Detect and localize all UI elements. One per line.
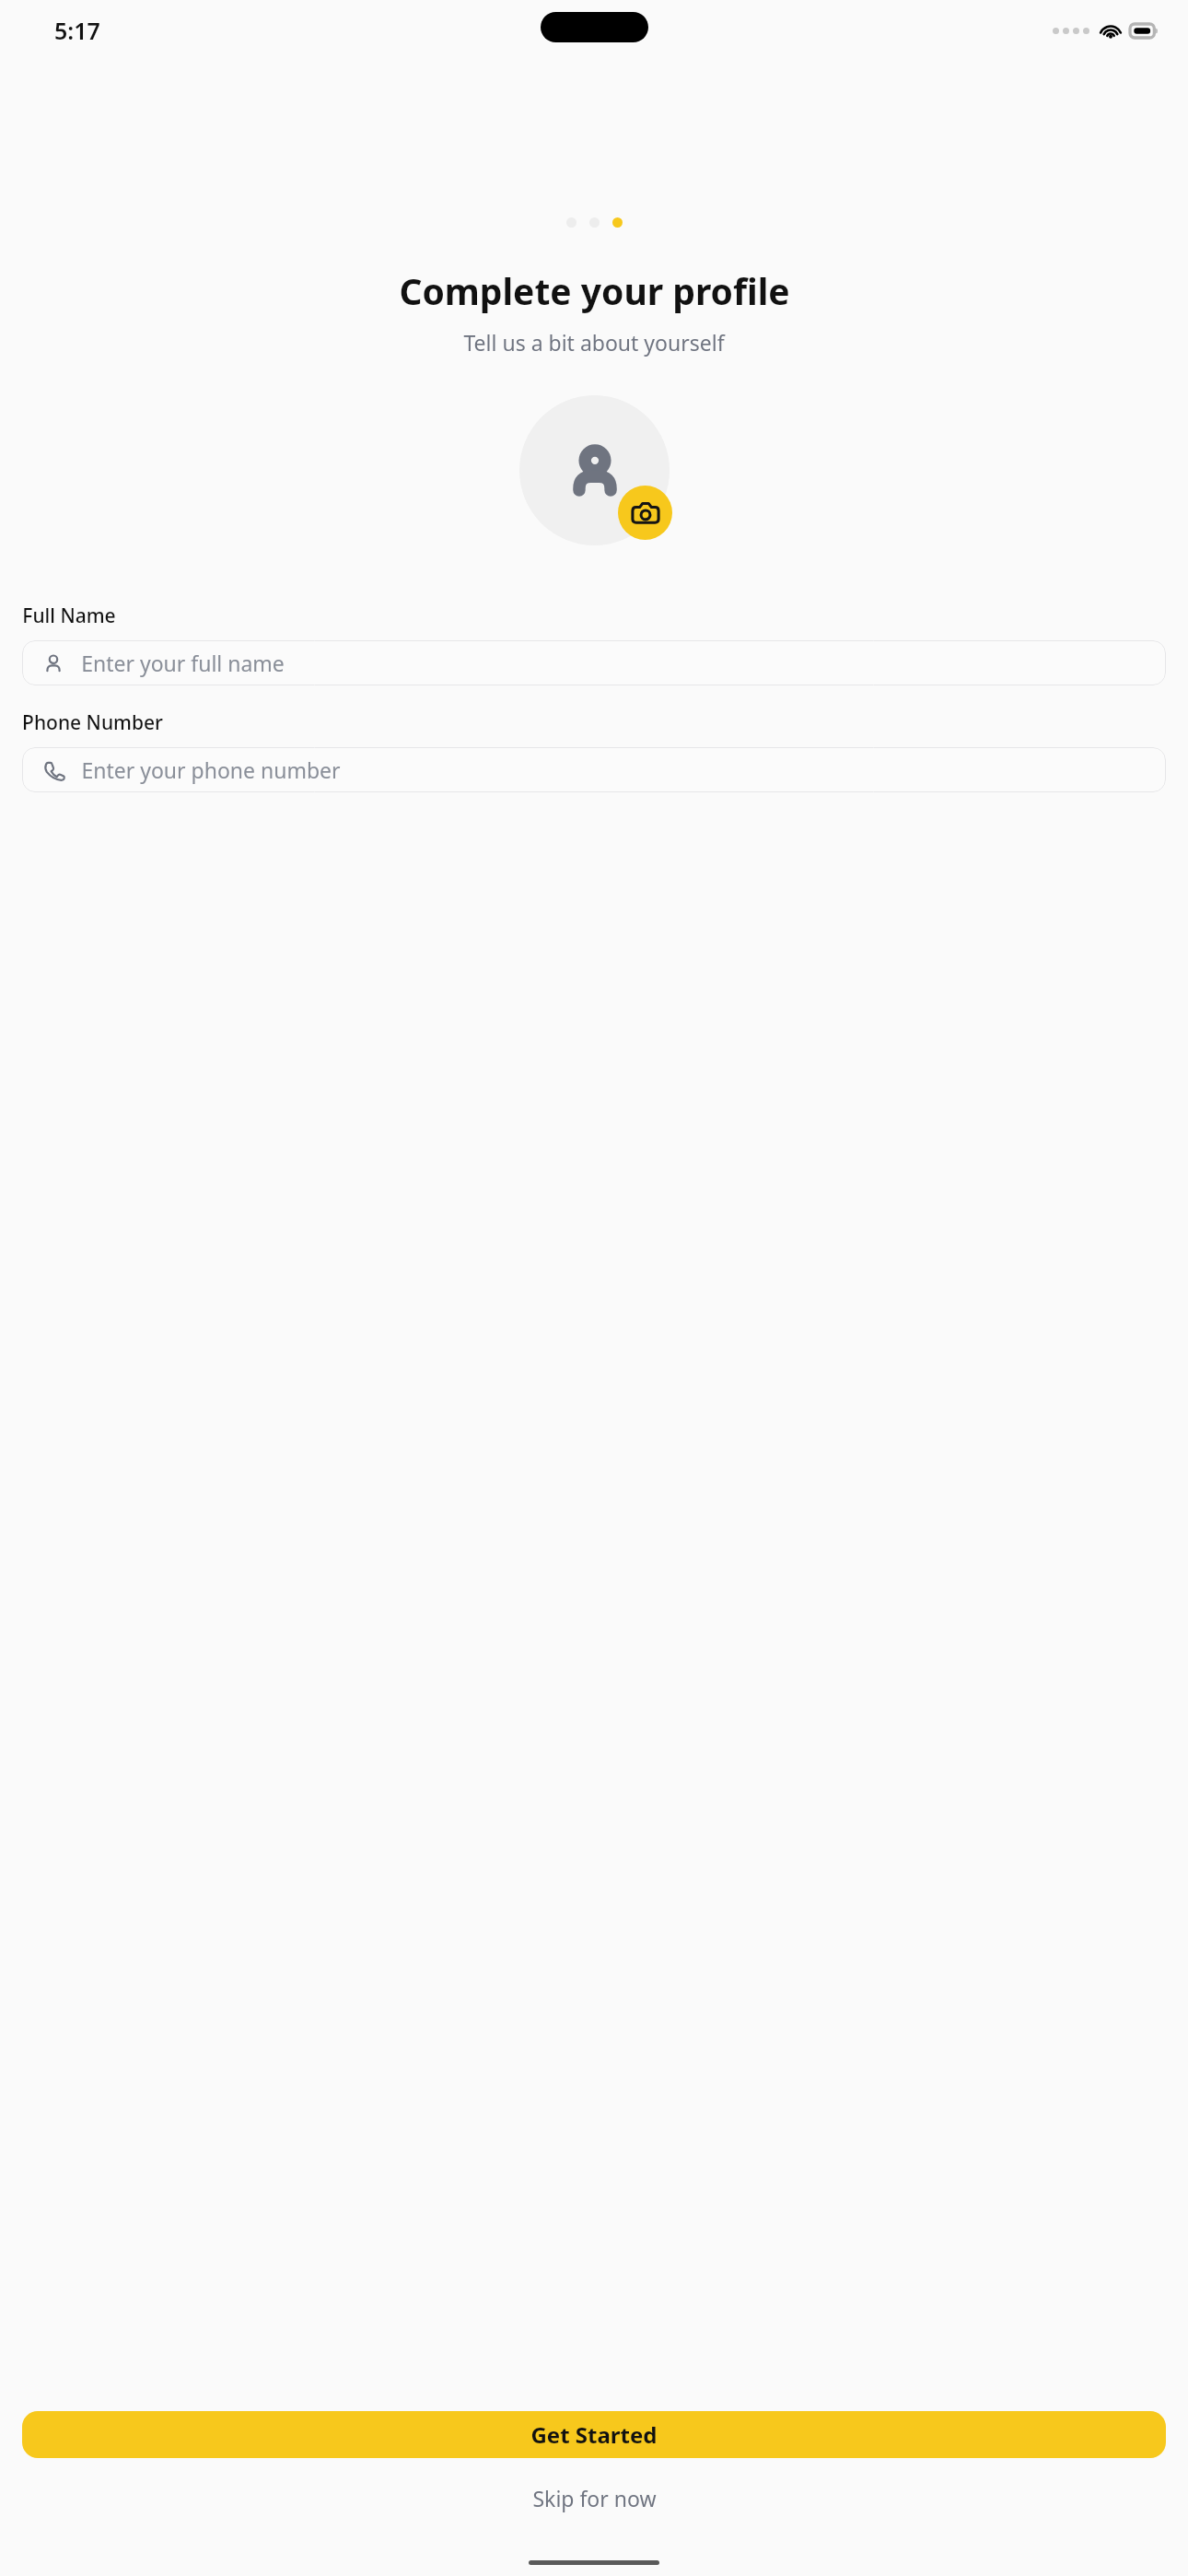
staticText: Phone Number — [22, 709, 163, 736]
button[interactable]: Change profile photo — [618, 486, 672, 540]
staticText: Skip for now — [532, 2484, 657, 2512]
button[interactable]: Get Started — [22, 2411, 1166, 2458]
staticText: Tell us a bit about yourself — [463, 328, 725, 357]
button[interactable]: Profile photo — [519, 395, 670, 545]
staticText: Full Name — [22, 603, 116, 629]
staticText: Get Started — [530, 2419, 658, 2450]
staticText: Enter your full name — [81, 649, 285, 677]
button[interactable]: Enter your full name — [22, 640, 1166, 685]
staticText: Enter your phone number — [81, 755, 341, 784]
staticText: 5:17 — [54, 15, 100, 46]
button[interactable]: Enter your phone number — [22, 747, 1166, 792]
button[interactable]: Skip for now — [514, 2476, 675, 2520]
staticText: Complete your profile — [399, 266, 790, 315]
